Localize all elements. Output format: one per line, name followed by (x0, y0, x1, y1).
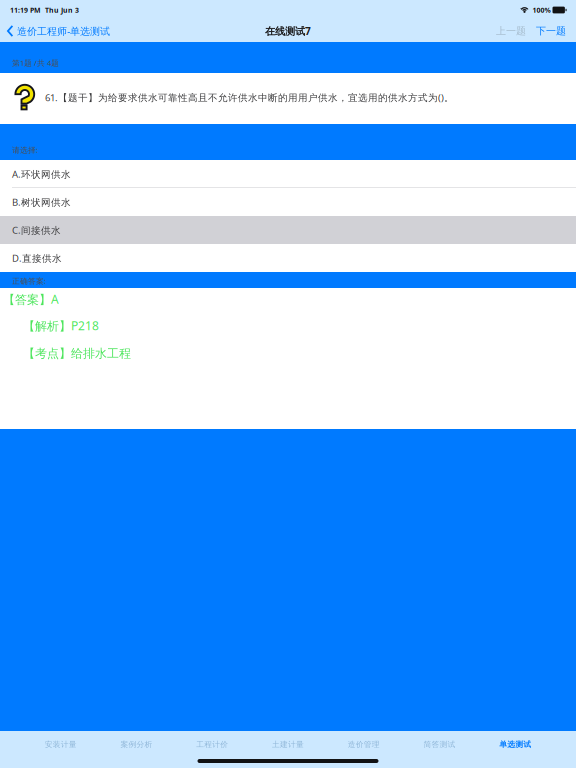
staticText: 造价工程师-单选测试 (17, 24, 110, 38)
button[interactable]: 安装计量 (23, 730, 99, 758)
staticText: 造价管理 (348, 740, 380, 749)
button[interactable]: 下一题 (530, 20, 576, 42)
staticText: A.环状网供水 (12, 167, 71, 180)
button[interactable]: B.树状网供水 (0, 188, 576, 216)
staticText: 61.【题干】为给要求供水可靠性高且不允许供水中断的用用户供水，宜选用的供水方式… (45, 91, 454, 104)
staticText: 简答测试 (423, 740, 455, 749)
staticText: 土建计量 (272, 740, 304, 749)
staticText: 请选择: (12, 144, 38, 155)
button[interactable]: 造价管理 (326, 730, 402, 758)
staticText: B.树状网供水 (12, 195, 71, 208)
button[interactable]: D.直接供水 (0, 244, 576, 272)
staticText: C.间接供水 (12, 223, 61, 236)
button[interactable]: 单选测试 (477, 730, 553, 758)
staticText: 上一题 (496, 25, 526, 37)
staticText: 第1题 /共 4题 (12, 57, 59, 68)
button[interactable]: C.间接供水 (0, 216, 576, 244)
button[interactable]: 工程计价 (174, 730, 250, 758)
staticText: D.直接供水 (12, 251, 62, 264)
staticText: 【答案】A (3, 291, 59, 307)
button[interactable]: 简答测试 (402, 730, 477, 758)
staticText: 【解析】P218 (23, 317, 99, 334)
staticText: 单选测试 (499, 740, 531, 749)
button[interactable]: 造价工程师-单选测试 (0, 20, 116, 42)
staticText: 正确答案: (12, 275, 46, 286)
staticText: 100% (528, 5, 552, 15)
staticText: 安装计量 (45, 740, 77, 749)
staticText: 工程计价 (196, 740, 228, 749)
button[interactable]: 上一题 (492, 20, 530, 42)
staticText: 在线测试7 (265, 24, 311, 38)
button[interactable]: A.环状网供水 (0, 160, 576, 188)
staticText: 【考点】给排水工程 (23, 346, 131, 361)
staticText: 案例分析 (121, 740, 153, 749)
staticText: 11:19 PM (10, 5, 41, 15)
button[interactable]: 土建计量 (250, 730, 326, 758)
staticText: Thu Jun 3 (41, 5, 79, 15)
staticText: 下一题 (536, 25, 566, 37)
button[interactable]: 案例分析 (99, 730, 174, 758)
